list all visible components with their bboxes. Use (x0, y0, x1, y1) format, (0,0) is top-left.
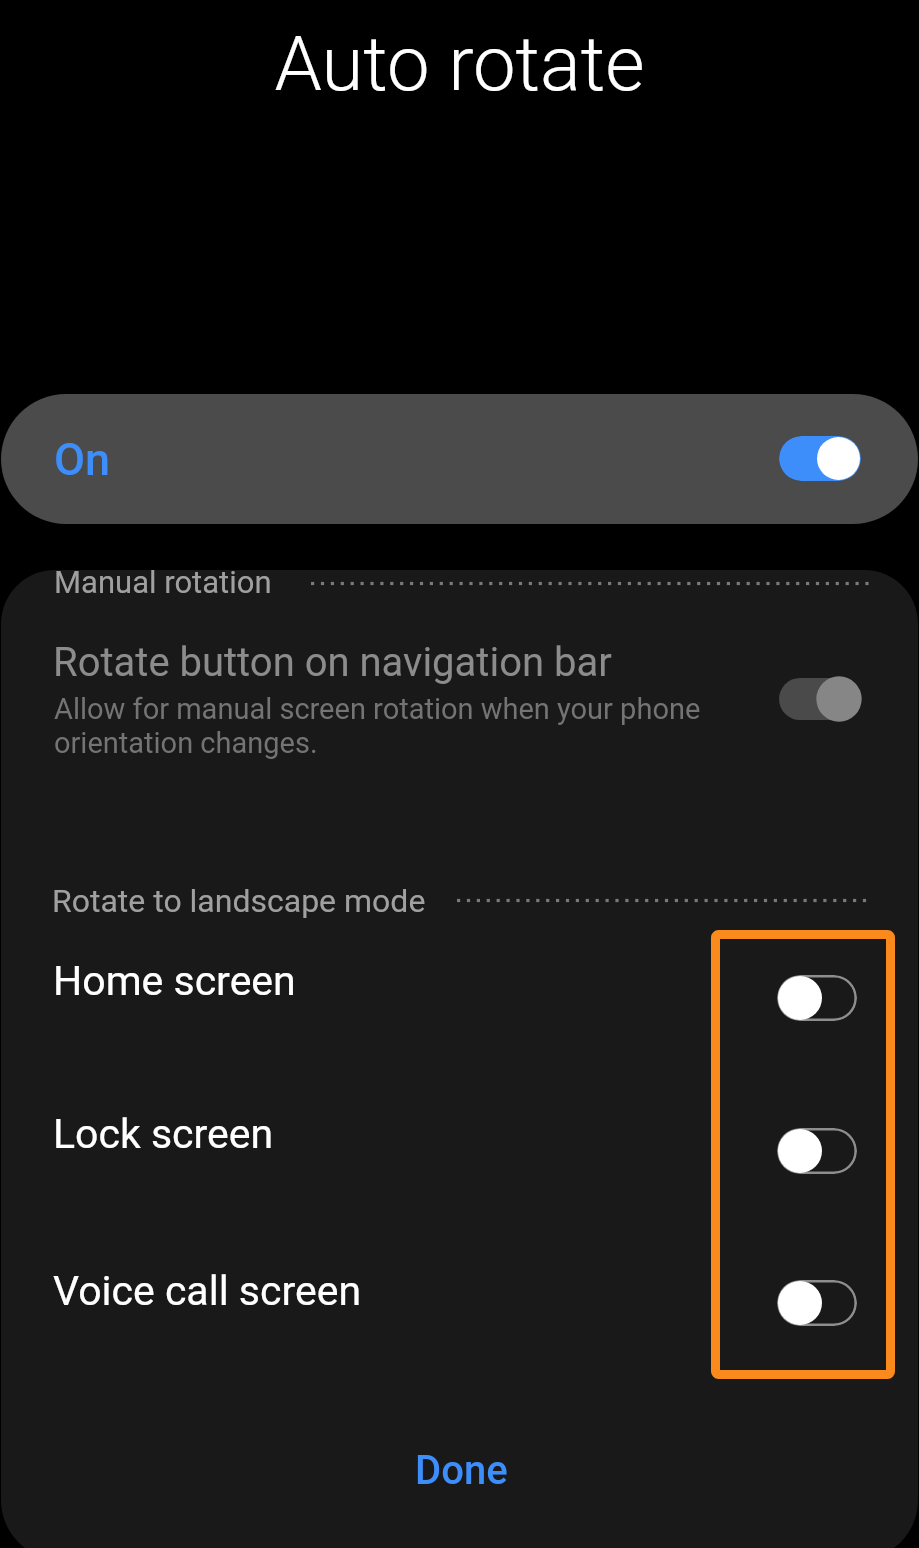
staticText: Rotate button on navigation bar (53, 639, 612, 686)
staticText: Home screen (53, 957, 296, 1005)
staticText: Lock screen (53, 1110, 274, 1158)
button[interactable]: Voice call screen (1, 1230, 918, 1350)
staticText: Rotate to landscape mode (52, 882, 426, 920)
button[interactable]: On (1, 394, 918, 524)
staticText: Voice call screen (53, 1267, 362, 1315)
other: Rotate button on navigation bar, on, dis… (779, 678, 860, 720)
staticText: Manual rotation (54, 570, 272, 600)
staticText: On (54, 433, 111, 486)
button[interactable]: Lock screen (1, 1073, 918, 1193)
button[interactable]: Home screen rotation, off (777, 975, 857, 1021)
staticText: Done (415, 1447, 508, 1494)
button[interactable]: Auto rotate on (779, 436, 861, 481)
staticText: Allow for manual screen rotation when yo… (54, 692, 701, 760)
button[interactable]: Lock screen rotation, off (777, 1128, 857, 1174)
button[interactable]: Done (1, 1406, 918, 1516)
button[interactable]: Home screen (1, 920, 918, 1040)
button[interactable]: Voice call screen rotation, off (777, 1280, 857, 1326)
button[interactable]: Rotate button on navigation bar (1, 618, 918, 808)
staticText: Auto rotate (0, 19, 919, 108)
